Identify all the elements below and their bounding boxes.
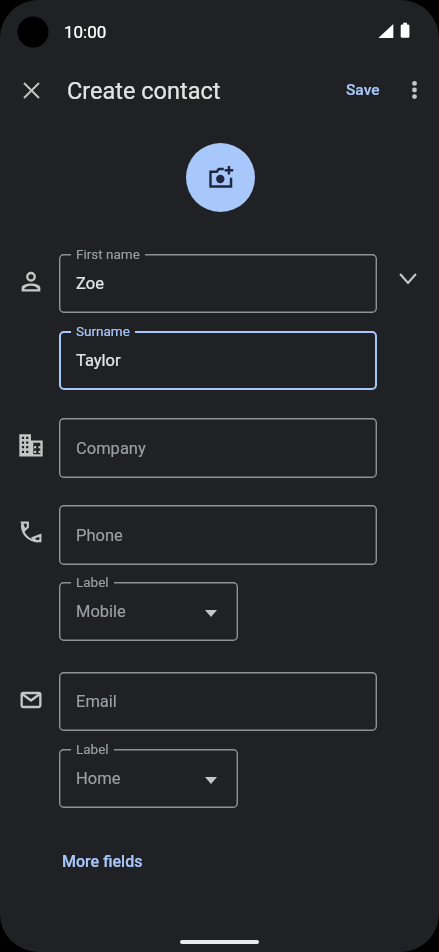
staticText: Mobile xyxy=(76,602,126,621)
staticText: First name xyxy=(76,246,140,262)
staticText: Company xyxy=(76,439,146,458)
staticText: Email xyxy=(76,692,117,711)
button[interactable]: Home xyxy=(59,749,238,808)
button[interactable]: Email xyxy=(59,672,377,731)
button[interactable]: More fields xyxy=(50,846,155,877)
staticText: 10:00 xyxy=(64,22,107,42)
button[interactable]: Expand name fields xyxy=(384,254,432,302)
button[interactable]: Add photo xyxy=(186,143,255,212)
staticText: Label xyxy=(76,741,109,757)
staticText: More fields xyxy=(62,852,143,871)
staticText: Create contact xyxy=(67,77,221,105)
button[interactable]: More options xyxy=(390,66,438,114)
button[interactable]: Close xyxy=(7,66,55,114)
staticText: Surname xyxy=(76,323,130,339)
button[interactable]: Phone xyxy=(59,505,377,565)
staticText: Label xyxy=(76,574,109,590)
button[interactable]: Taylor xyxy=(59,331,377,390)
staticText: Save xyxy=(346,81,380,99)
button[interactable]: Zoe xyxy=(59,254,377,313)
button[interactable]: Mobile xyxy=(59,582,238,641)
staticText: Phone xyxy=(76,526,123,545)
button[interactable]: Company xyxy=(59,418,377,478)
staticText: Taylor xyxy=(76,351,121,370)
staticText: Zoe xyxy=(76,274,104,293)
button[interactable]: Save xyxy=(337,74,389,106)
staticText: Home xyxy=(76,769,121,788)
